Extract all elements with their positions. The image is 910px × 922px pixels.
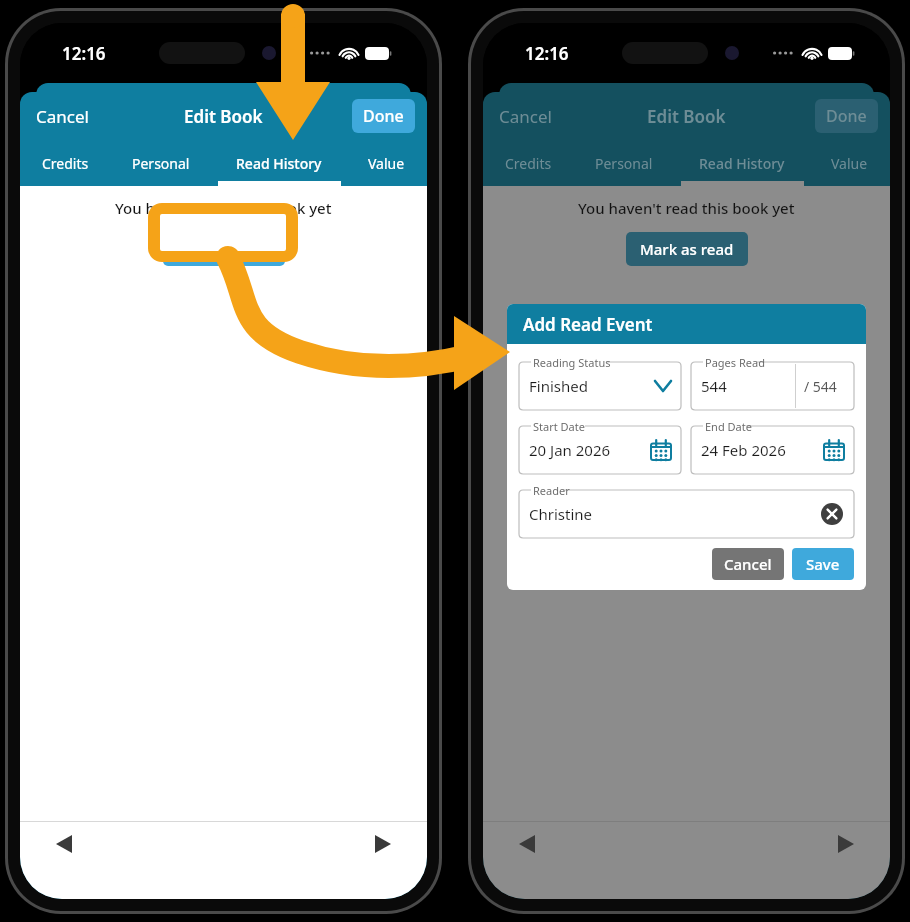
button[interactable]: Cancel xyxy=(495,101,556,132)
button[interactable]: Cancel xyxy=(712,548,784,580)
staticText: You haven't read this book yet xyxy=(115,198,332,218)
staticText: Value xyxy=(368,154,405,173)
button[interactable]: 544 xyxy=(701,362,844,410)
staticText: 12:16 xyxy=(525,42,569,65)
staticText: 12:16 xyxy=(62,42,106,65)
staticText: Cancel xyxy=(36,105,89,128)
staticText: Value xyxy=(831,154,868,173)
staticText: / 544 xyxy=(804,377,837,396)
staticText: Reader xyxy=(533,483,570,498)
button[interactable]: Done xyxy=(352,99,415,133)
staticText: Start Date xyxy=(533,419,585,434)
button[interactable]: Next xyxy=(824,822,868,866)
staticText: Credits xyxy=(42,154,89,173)
staticText: Read History xyxy=(699,154,785,173)
staticText: Save xyxy=(806,554,840,574)
button[interactable]: Personal xyxy=(110,140,212,186)
button[interactable]: Mark as read xyxy=(163,232,285,266)
button[interactable]: Clear reader xyxy=(820,502,844,526)
staticText: Edit Book xyxy=(647,105,726,128)
staticText: 544 xyxy=(701,376,795,396)
button[interactable]: Save xyxy=(792,548,854,580)
staticText: You haven't read this book yet xyxy=(578,198,795,218)
staticText: End Date xyxy=(705,419,752,434)
staticText: Finished xyxy=(529,376,655,396)
button[interactable]: Personal xyxy=(573,140,675,186)
button[interactable]: Done xyxy=(815,99,878,133)
staticText: Cancel xyxy=(724,554,772,574)
button[interactable]: Read History xyxy=(675,140,809,186)
button[interactable]: Value xyxy=(346,140,427,186)
staticText: Reading Status xyxy=(533,355,611,370)
staticText: 20 Jan 2026 xyxy=(529,440,651,460)
button[interactable]: Credits xyxy=(483,140,573,186)
button[interactable]: Previous xyxy=(42,822,86,866)
button[interactable]: 24 Feb 2026 xyxy=(701,426,844,474)
staticText: Personal xyxy=(595,154,653,173)
button[interactable]: Previous xyxy=(505,822,549,866)
staticText: Add Read Event xyxy=(523,313,653,336)
staticText: Personal xyxy=(132,154,190,173)
button[interactable]: Value xyxy=(809,140,890,186)
button[interactable]: Finished xyxy=(529,362,671,410)
button[interactable]: Mark as read xyxy=(626,232,748,266)
staticText: Mark as read xyxy=(640,239,734,259)
staticText: Done xyxy=(826,105,867,127)
button[interactable]: Cancel xyxy=(32,101,93,132)
staticText: Mark as read xyxy=(177,239,271,259)
button[interactable]: 20 Jan 2026 xyxy=(529,426,671,474)
button[interactable]: Credits xyxy=(20,140,110,186)
staticText: Cancel xyxy=(499,105,552,128)
button[interactable]: Christine xyxy=(529,490,844,538)
staticText: Christine xyxy=(529,504,820,524)
staticText: Credits xyxy=(505,154,552,173)
staticText: Read History xyxy=(236,154,322,173)
button[interactable]: Read History xyxy=(212,140,346,186)
staticText: Done xyxy=(363,105,404,127)
staticText: 24 Feb 2026 xyxy=(701,440,824,460)
staticText: Edit Book xyxy=(184,105,263,128)
button[interactable]: Next xyxy=(361,822,405,866)
staticText: Pages Read xyxy=(705,355,765,370)
